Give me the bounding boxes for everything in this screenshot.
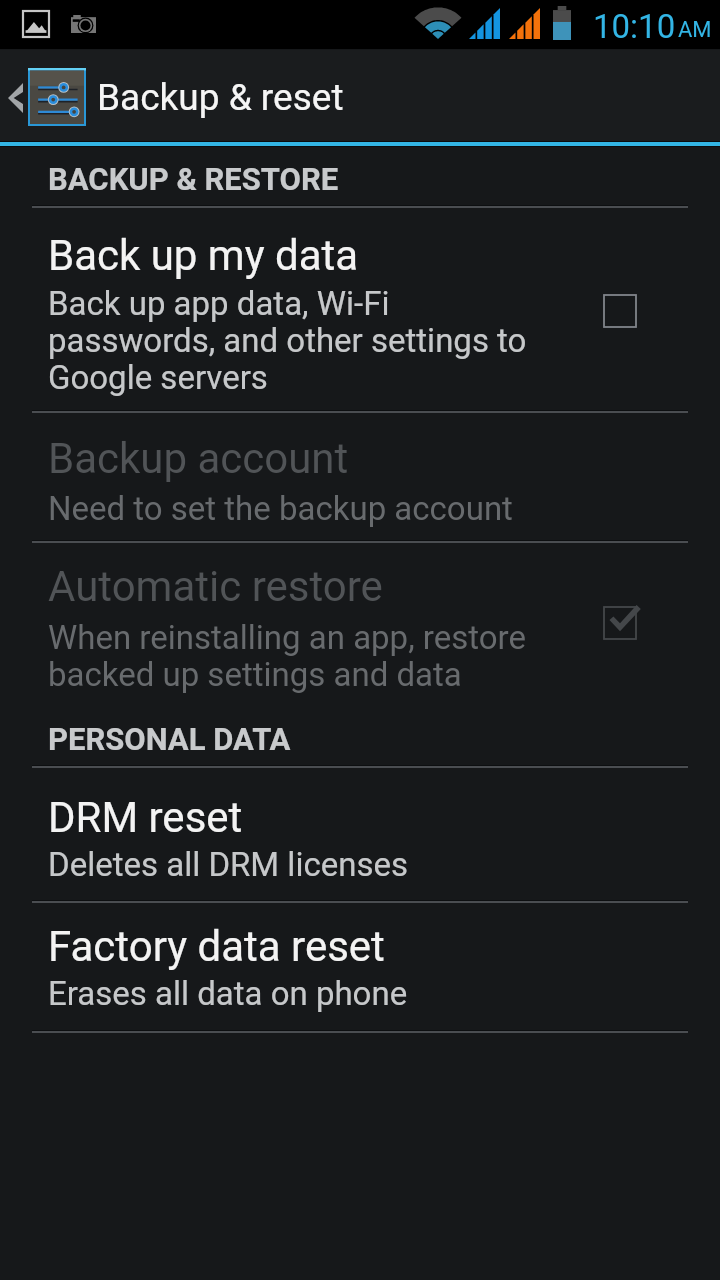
staticText: Back up my data: [48, 231, 359, 280]
button[interactable]: Automatic restore: [0, 541, 720, 700]
staticText: Factory data reset: [48, 922, 385, 971]
staticText: Need to set the backup account: [48, 491, 513, 528]
staticText: Backup account: [48, 434, 349, 483]
button[interactable]: Back up my data: [0, 206, 720, 411]
staticText: 10:10: [593, 7, 676, 46]
staticText: BACKUP & RESTORE: [48, 161, 339, 197]
staticText: Back up app data, Wi-Fi passwords, and o…: [48, 286, 527, 397]
staticText: AM: [678, 17, 712, 43]
staticText: Backup & reset: [97, 76, 344, 119]
button[interactable]: Unchecked: [584, 275, 656, 347]
button[interactable]: DRM reset: [0, 766, 720, 901]
staticText: Automatic restore: [48, 562, 383, 611]
staticText: PERSONAL DATA: [48, 721, 291, 757]
staticText: When reinstalling an app, restore backed…: [48, 620, 526, 694]
staticText: Erases all data on phone: [48, 976, 408, 1013]
staticText: Deletes all DRM licenses: [48, 847, 408, 884]
button[interactable]: Backup account: [0, 411, 720, 541]
staticText: DRM reset: [48, 793, 243, 842]
button[interactable]: Factory data reset: [0, 901, 720, 1031]
button[interactable]: Navigate up, Backup & reset: [0, 50, 720, 142]
button[interactable]: Checked: [584, 587, 656, 659]
